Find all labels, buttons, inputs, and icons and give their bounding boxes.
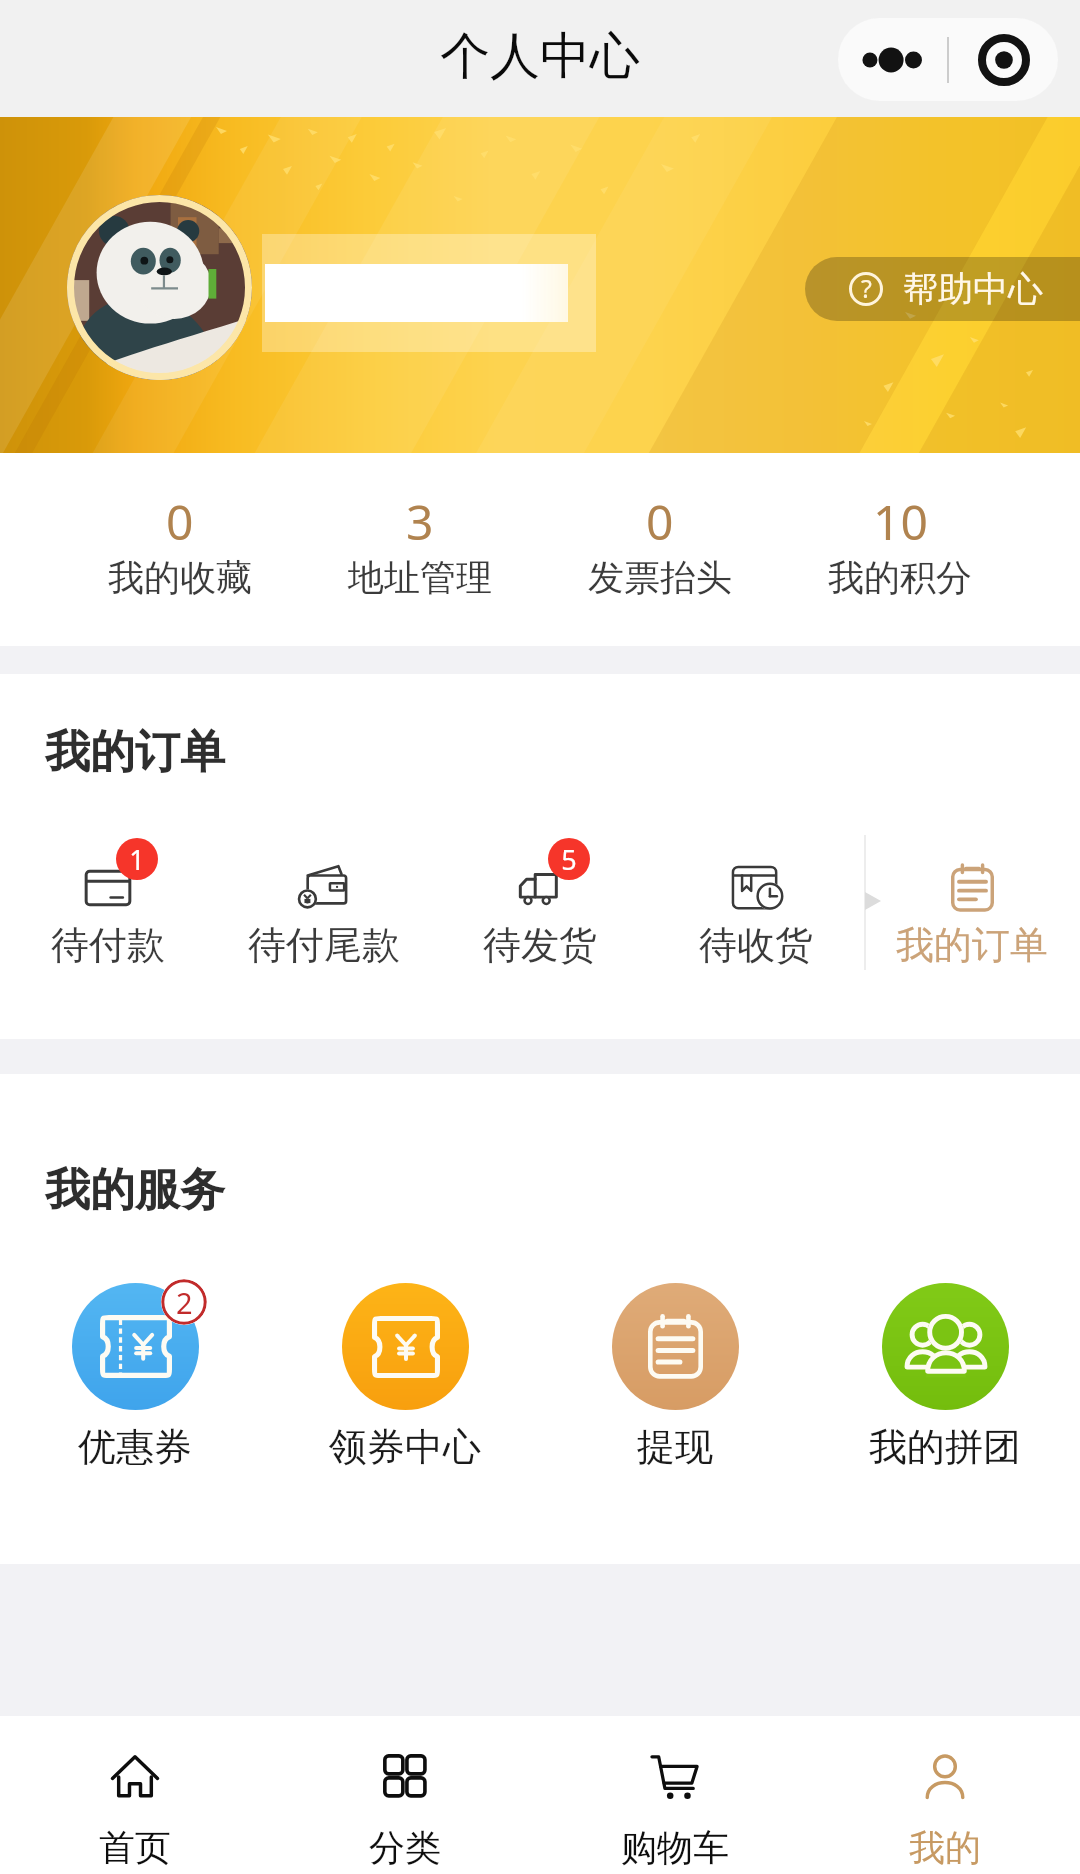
staticText: 我的拼团 [869, 1423, 1021, 1471]
staticText: 0 [166, 489, 194, 554]
button[interactable]: 首页 [0, 1716, 270, 1874]
button[interactable]: 我的 [810, 1716, 1080, 1874]
button[interactable]: 提现 [540, 1279, 810, 1471]
button[interactable]: 我的拼团 [810, 1279, 1080, 1471]
button[interactable]: 1 [0, 864, 216, 999]
staticText: 待付尾款 [248, 921, 400, 969]
staticText: 5 [561, 841, 577, 878]
staticText: 我的收藏 [108, 555, 252, 600]
staticText: 个人中心 [440, 25, 640, 88]
staticText: 3 [406, 489, 434, 554]
staticText: 地址管理 [348, 555, 492, 600]
staticText: 待发货 [483, 921, 597, 969]
button[interactable]: 3 [300, 453, 540, 646]
staticText: 我的订单 [896, 921, 1048, 969]
staticText: 我的订单 [45, 724, 225, 781]
button[interactable]: 领券中心 [270, 1279, 540, 1471]
button[interactable]: 购物车 [540, 1716, 810, 1874]
button[interactable]: 2 [0, 1279, 270, 1471]
staticText: 领券中心 [329, 1423, 481, 1471]
staticText: 0 [646, 489, 674, 554]
staticText: 1 [129, 841, 145, 878]
button[interactable]: 分类 [270, 1716, 540, 1874]
button[interactable]: Profile avatar [67, 195, 252, 380]
button[interactable]: 0 [540, 453, 780, 646]
staticText: ? [861, 271, 872, 305]
staticText: 待付款 [51, 921, 165, 969]
button[interactable]: 5 [432, 864, 648, 999]
staticText: 我的服务 [45, 1162, 225, 1219]
staticText: 提现 [637, 1423, 713, 1471]
button[interactable]: 待付尾款 [216, 864, 432, 999]
staticText: 首页 [99, 1825, 171, 1870]
button[interactable]: Profile avatar [0, 117, 1080, 453]
staticText: 发票抬头 [588, 555, 732, 600]
button[interactable]: 0 [60, 453, 300, 646]
staticText: 购物车 [621, 1825, 729, 1870]
button[interactable]: ? [805, 257, 1080, 321]
staticText: 分类 [369, 1825, 441, 1870]
staticText: 待收货 [699, 921, 813, 969]
staticText: 优惠券 [78, 1423, 192, 1471]
staticText: 2 [176, 1283, 193, 1322]
button[interactable]: More options and close [838, 18, 1058, 101]
staticText: 我的 [909, 1825, 981, 1870]
button[interactable]: 10 [780, 453, 1020, 646]
staticText: 10 [873, 489, 928, 554]
button[interactable]: 待收货 [648, 864, 864, 999]
staticText: 帮助中心 [903, 267, 1043, 311]
staticText: 我的积分 [828, 555, 972, 600]
button[interactable]: 我的订单 [864, 864, 1080, 999]
